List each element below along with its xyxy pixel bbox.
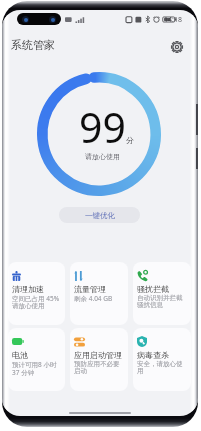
- button[interactable]: 一键优化: [59, 207, 140, 223]
- button[interactable]: 骚扰拦截: [133, 262, 191, 325]
- button[interactable]: Settings: [167, 37, 187, 57]
- staticText: 一键优化: [85, 211, 115, 220]
- staticText: 病毒查杀: [137, 350, 169, 360]
- button[interactable]: 流量管理: [70, 262, 128, 325]
- staticText: 安全，请放心使 用: [137, 360, 183, 375]
- staticText: 空间已占用 45% 请放心使用: [12, 294, 60, 310]
- button[interactable]: 病毒查杀: [133, 328, 191, 391]
- staticText: 电池: [12, 350, 28, 360]
- staticText: 预计可用8 小时 37 分钟: [12, 360, 57, 377]
- staticText: 预防应用不必要 启动: [74, 360, 120, 375]
- staticText: 流量管理: [74, 284, 106, 294]
- staticText: 清理加速: [12, 284, 44, 294]
- button[interactable]: 电池: [8, 328, 65, 391]
- staticText: 请放心使用: [85, 152, 120, 161]
- staticText: 99: [79, 99, 126, 155]
- button[interactable]: 系统管家: [11, 38, 55, 52]
- button[interactable]: 清理加速: [8, 262, 65, 325]
- staticText: 骚扰拦截: [137, 284, 169, 294]
- staticText: 自动识别并拦截 骚扰信息: [137, 294, 183, 309]
- staticText: 14:18: [164, 15, 182, 25]
- staticText: 剩余 4.04 GB: [74, 294, 113, 303]
- staticText: 应用启动管理: [74, 350, 122, 360]
- staticText: 系统管家: [11, 38, 55, 52]
- staticText: 分: [126, 135, 134, 145]
- button[interactable]: 应用启动管理: [70, 328, 128, 391]
